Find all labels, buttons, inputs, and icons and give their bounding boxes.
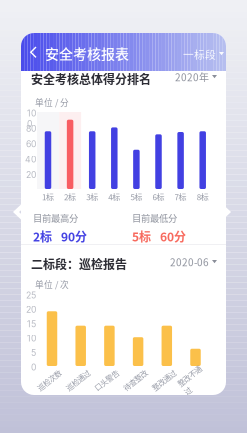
button[interactable]: 一标段 — [179, 44, 228, 64]
staticText: 5 — [31, 348, 36, 358]
staticText: 20 — [26, 304, 36, 315]
staticText: 目前最低分 — [132, 211, 177, 224]
staticText: 待查整改 — [121, 375, 149, 385]
staticText: 2标 — [64, 191, 76, 203]
staticText: 8标 — [197, 191, 209, 203]
staticText: 2020年 — [175, 70, 209, 84]
staticText: 15 — [27, 319, 36, 329]
staticText: 25 — [26, 290, 36, 300]
staticText: 巡检通过 — [64, 375, 92, 385]
staticText: 口头警告 — [92, 375, 120, 385]
staticText: 5标 — [130, 191, 142, 203]
button[interactable]: 2020-06 — [167, 254, 220, 270]
button[interactable]: Previous — [10, 195, 32, 229]
staticText: 二标段：巡检报告 — [31, 255, 127, 272]
button[interactable]: Next — [212, 195, 234, 229]
staticText: 60 — [26, 139, 36, 149]
staticText: 目前最高分 — [33, 211, 78, 224]
staticText: 安全考核总体得分排名 — [31, 70, 151, 87]
button[interactable]: 2020年 — [172, 69, 220, 85]
staticText: 80 — [26, 123, 36, 134]
staticText: 安全考核报表 — [45, 43, 129, 63]
staticText: 0 — [31, 362, 36, 372]
staticText: 2020-06 — [170, 255, 209, 269]
staticText: 7标 — [175, 191, 187, 203]
staticText: 100 — [27, 108, 36, 129]
button[interactable]: Back — [26, 39, 48, 65]
staticText: 1标 — [42, 191, 54, 203]
staticText: 单位 / 次 — [35, 278, 69, 290]
staticText: 20 — [26, 170, 36, 180]
staticText: 一标段 — [183, 46, 216, 62]
staticText: 5标 60分 — [132, 227, 186, 245]
staticText: 整改不通过 — [178, 369, 206, 391]
staticText: 巡检次数 — [35, 375, 63, 385]
staticText: 4标 — [108, 191, 120, 203]
staticText: 单位 / 分 — [35, 96, 69, 108]
staticText: 40 — [25, 154, 36, 165]
staticText: 10 — [27, 333, 36, 344]
staticText: 6标 — [152, 191, 164, 203]
staticText: 整改通过 — [150, 375, 178, 385]
staticText: 3标 — [86, 191, 98, 203]
staticText: 2标 90分 — [33, 227, 87, 245]
